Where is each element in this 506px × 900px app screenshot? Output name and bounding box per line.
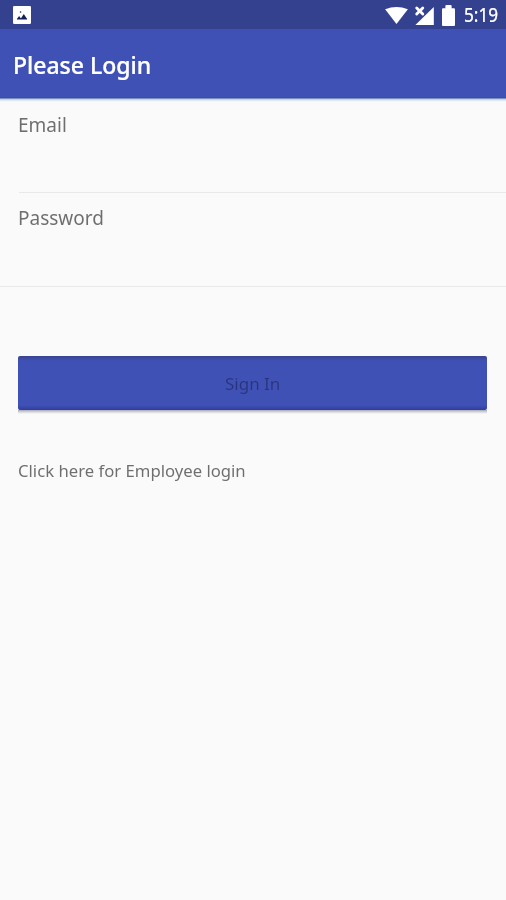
- staticText: Email: [18, 112, 67, 138]
- staticText: 5:19: [464, 1, 498, 28]
- staticText: Sign In: [225, 372, 281, 395]
- other: No SIM: [415, 7, 434, 25]
- button[interactable]: Password: [0, 193, 506, 286]
- button[interactable]: Click here for Employee login: [0, 455, 506, 489]
- other: Screenshot captured: [13, 6, 31, 24]
- staticText: Password: [18, 205, 104, 231]
- button[interactable]: Sign In: [18, 356, 487, 410]
- other: Wi-Fi: [386, 6, 407, 24]
- staticText: Please Login: [13, 49, 152, 80]
- other: Battery: [442, 5, 455, 26]
- staticText: Click here for Employee login: [18, 459, 246, 482]
- button[interactable]: Email: [0, 98, 506, 192]
